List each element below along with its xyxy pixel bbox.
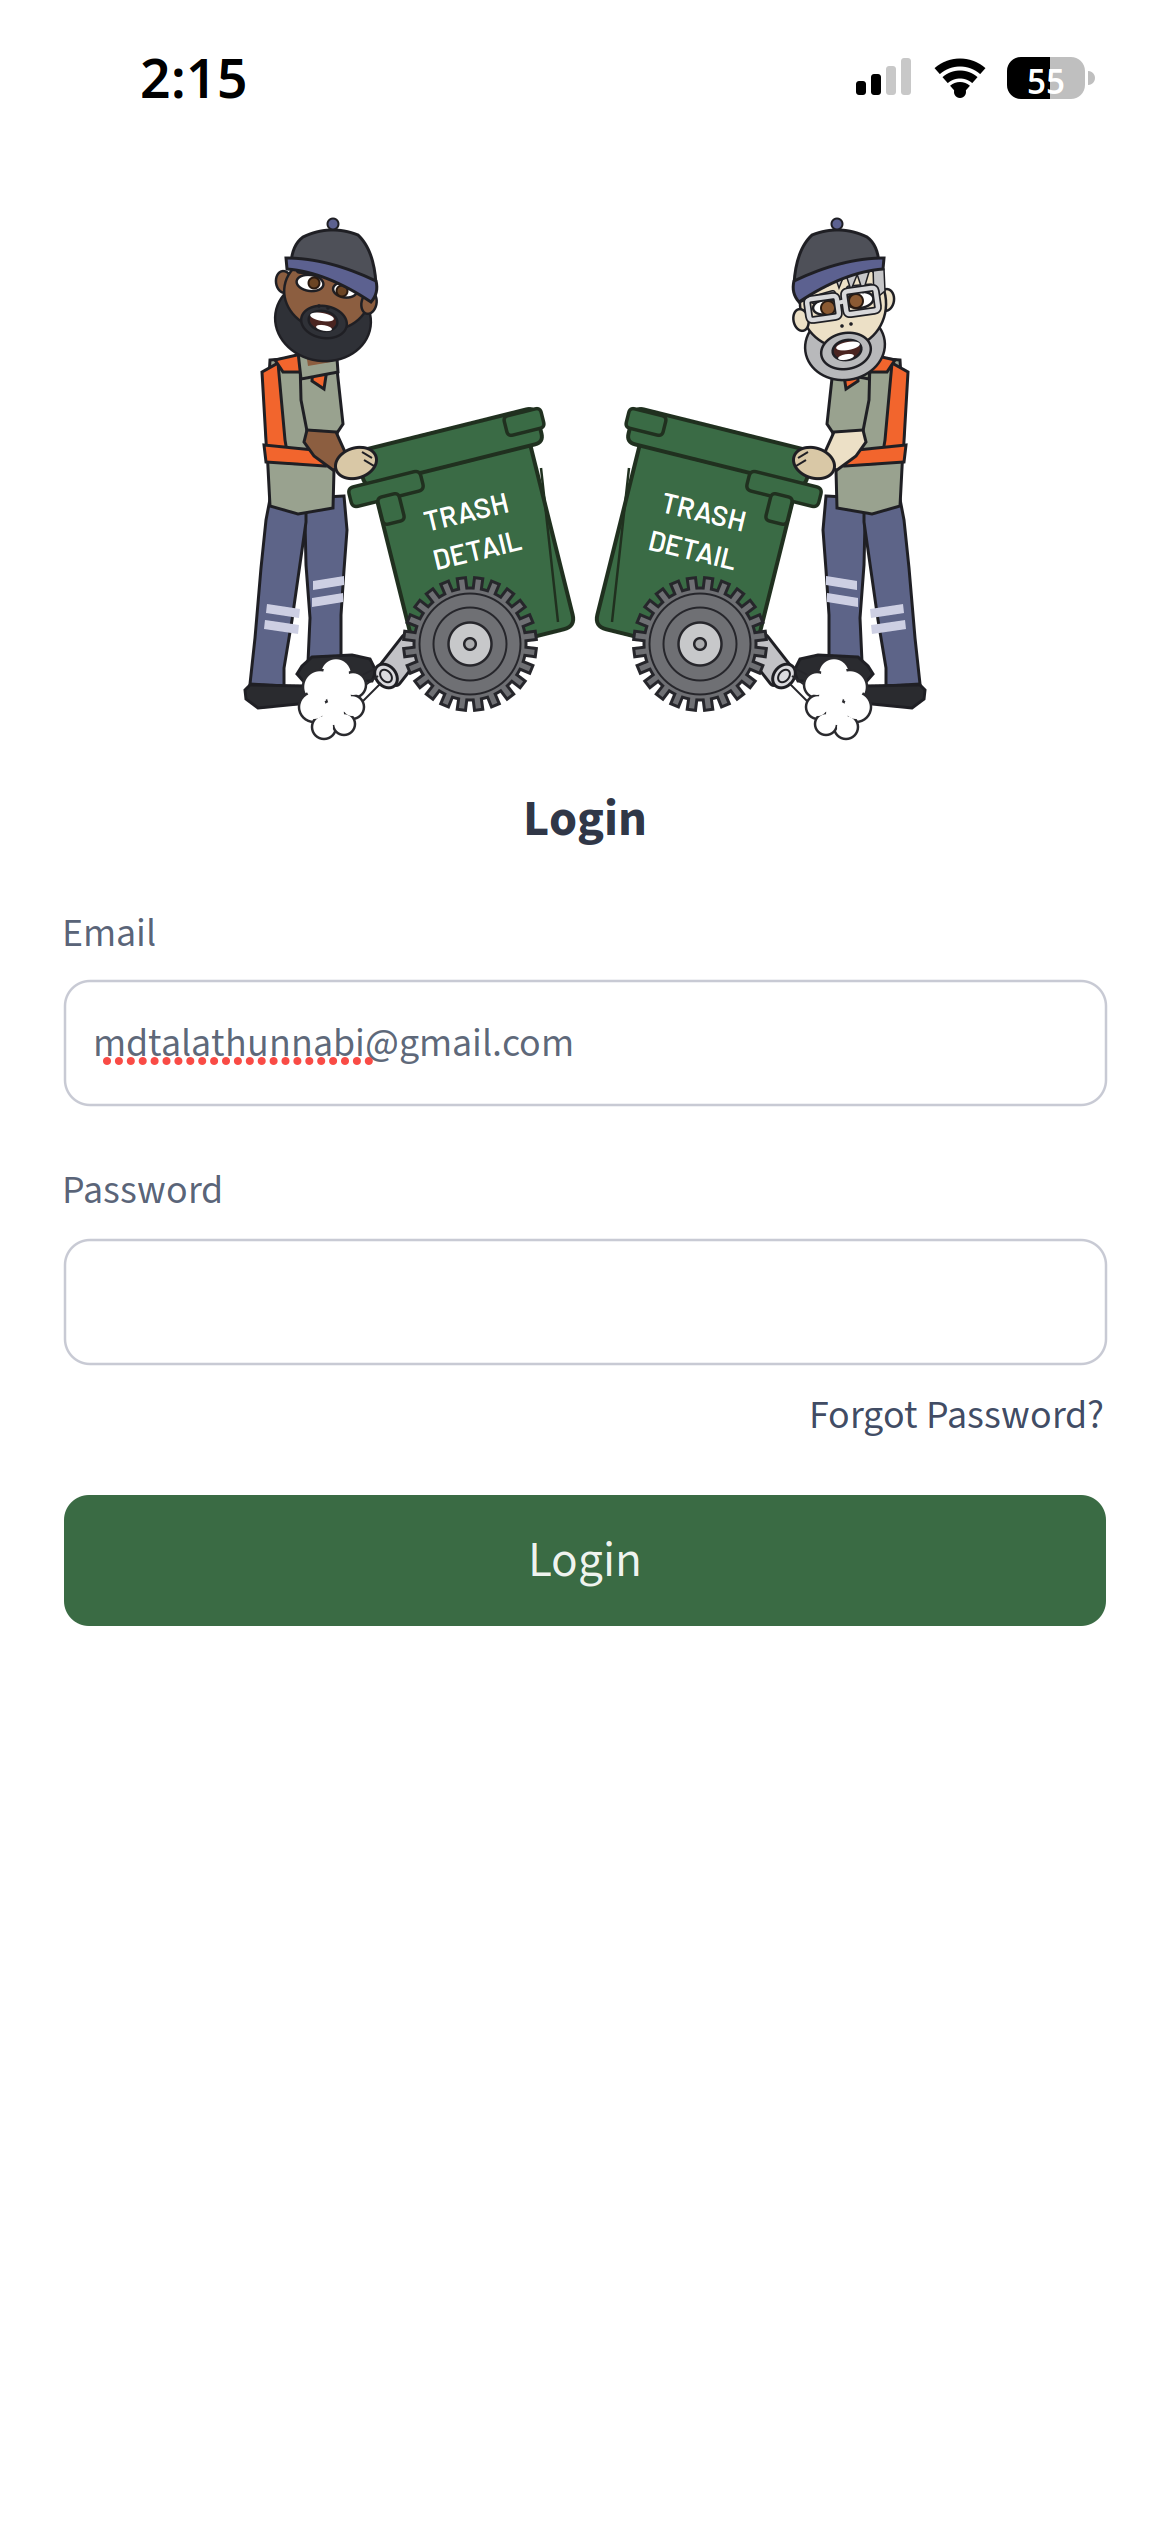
button[interactable]: Email [65,981,1106,1105]
button[interactable]: Login [64,1495,1106,1626]
staticText: 55 [1027,59,1065,103]
staticText: Forgot Password? [809,1387,1104,1444]
staticText: DETAIL [648,532,738,566]
staticText: Login [528,1525,642,1596]
staticText: 2:15 [140,42,248,113]
staticText: Email [62,905,156,962]
staticText: mdtalathunnabi@gmail.com [93,1015,574,1072]
staticText: TRASH [423,494,509,528]
staticText: DETAIL [432,532,522,566]
staticText: Login [523,783,647,855]
button[interactable]: Password [65,1240,1106,1364]
button[interactable]: Forgot Password? [809,1387,1104,1444]
staticText: TRASH [661,494,747,528]
staticText: Password [62,1162,223,1219]
